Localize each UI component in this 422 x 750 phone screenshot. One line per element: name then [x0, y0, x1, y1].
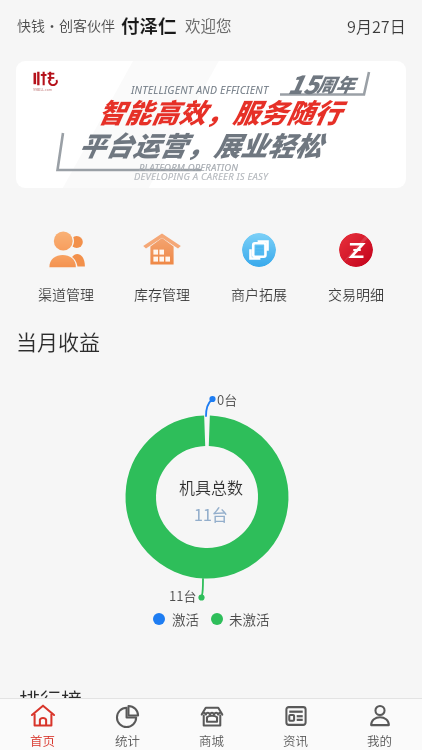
staticText: INTELLIGENT AND EFFICIENT: [131, 83, 269, 97]
button[interactable]: 99BILL.com: [16, 61, 406, 188]
staticText: 统计: [115, 731, 141, 749]
staticText: 未激活: [229, 609, 270, 629]
staticText: 平台运营，展业轻松: [78, 125, 321, 164]
staticText: 渠道管理: [38, 284, 94, 304]
button[interactable]: 商城: [170, 699, 254, 749]
button[interactable]: 资讯: [254, 699, 338, 749]
button[interactable]: 库存管理: [114, 223, 210, 310]
staticText: 99BILL.com: [33, 87, 53, 92]
staticText: 欢迎您: [185, 14, 232, 36]
staticText: 资讯: [283, 731, 309, 749]
button[interactable]: 渠道管理: [18, 223, 114, 310]
staticText: 周年: [316, 70, 355, 98]
staticText: DEVELOPING A CAREER IS EASY: [134, 170, 269, 183]
staticText: 11台: [169, 586, 197, 605]
button[interactable]: 我的: [338, 699, 422, 749]
staticText: 商户拓展: [231, 284, 287, 304]
staticText: 9月27日: [347, 14, 406, 37]
staticText: 排行榜: [19, 684, 82, 714]
staticText: 当月收益: [16, 326, 100, 356]
staticText: 库存管理: [134, 284, 190, 304]
staticText: 智能高效，服务随行: [97, 92, 340, 131]
button[interactable]: 统计: [85, 699, 170, 749]
button[interactable]: 首页: [0, 699, 85, 749]
staticText: 商城: [199, 731, 225, 749]
staticText: 快钱·创客伙伴: [17, 15, 115, 35]
staticText: 11台: [194, 502, 228, 525]
staticText: 首页: [30, 731, 56, 749]
button[interactable]: 商户拓展: [210, 223, 307, 310]
staticText: PLATFORM OPERATION: [139, 161, 239, 174]
staticText: 付泽仁: [121, 12, 177, 39]
staticText: 激活: [172, 609, 199, 629]
staticText: 我的: [367, 731, 393, 749]
button[interactable]: 交易明细: [307, 223, 404, 310]
staticText: 0台: [217, 390, 238, 409]
staticText: 机具总数: [179, 475, 244, 498]
staticText: 15: [287, 65, 318, 101]
staticText: 交易明细: [328, 284, 384, 304]
